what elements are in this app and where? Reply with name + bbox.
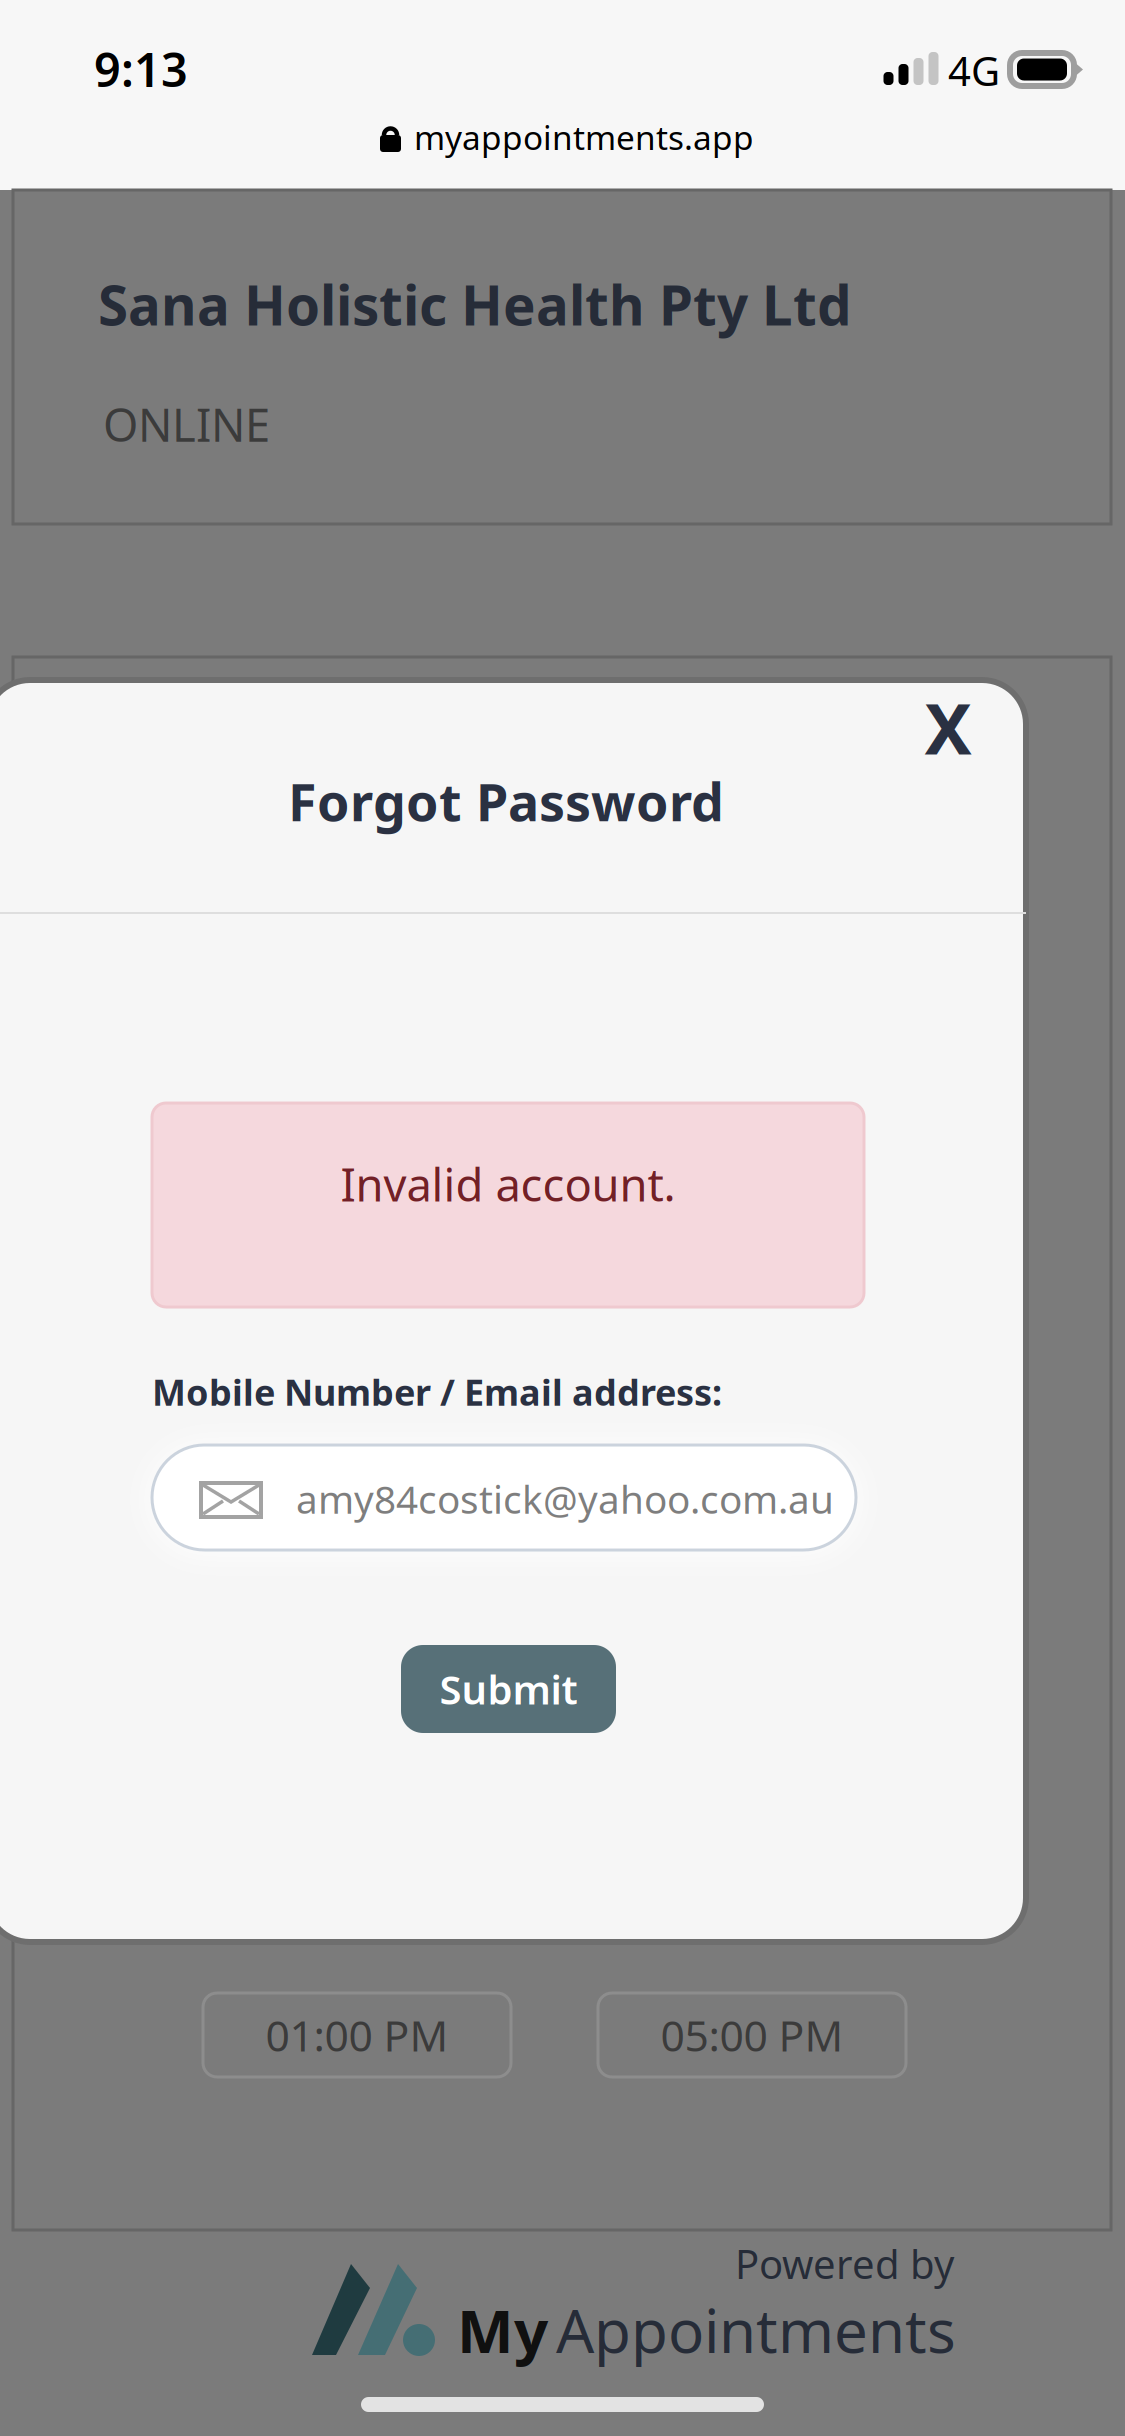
staticText: 9:13 bbox=[94, 38, 188, 100]
staticText: 01:00 PM bbox=[265, 2007, 448, 2063]
staticText: Sana Holistic Health Pty Ltd bbox=[98, 268, 852, 341]
staticText: Forgot Password bbox=[288, 766, 724, 836]
staticText: amy84costick@yahoo.com.au bbox=[296, 1473, 834, 1524]
staticText: Appointments bbox=[556, 2290, 956, 2370]
staticText: Powered by bbox=[735, 2237, 954, 2290]
staticText: myappointments.app bbox=[414, 115, 754, 159]
button[interactable]: Submit bbox=[401, 1645, 616, 1733]
button[interactable]: 05:00 PM bbox=[598, 1993, 906, 2077]
staticText: My bbox=[457, 2290, 548, 2370]
staticText: X bbox=[924, 680, 971, 774]
staticText: 05:00 PM bbox=[660, 2007, 843, 2063]
button[interactable]: Close bbox=[893, 672, 1003, 782]
staticText: Submit bbox=[439, 1662, 577, 1715]
button[interactable]: myappointments.app bbox=[0, 110, 1125, 190]
staticText: Invalid account. bbox=[340, 1154, 675, 1214]
button[interactable]: 01:00 PM bbox=[203, 1993, 511, 2077]
staticText: Mobile Number / Email address: bbox=[152, 1368, 722, 1416]
staticText: 4G bbox=[948, 44, 1000, 97]
staticText: ONLINE bbox=[103, 394, 270, 454]
